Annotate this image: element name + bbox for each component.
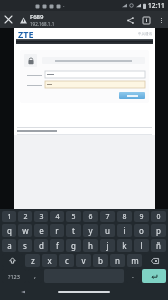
staticText: 1 — [7, 212, 12, 222]
staticText: m — [131, 255, 139, 266]
staticText: n — [115, 255, 120, 266]
button[interactable]: g — [66, 239, 81, 252]
staticText: g — [71, 240, 76, 251]
staticText: r — [55, 225, 59, 236]
staticText: 2 — [23, 212, 28, 222]
staticText: b — [98, 255, 103, 266]
button[interactable]: u — [100, 224, 115, 237]
staticText: c — [65, 255, 69, 266]
staticText: 7 — [105, 212, 110, 222]
staticText: ZTE — [18, 28, 34, 39]
button[interactable]: d — [34, 239, 48, 252]
staticText: ñ — [156, 240, 161, 251]
staticText: j — [106, 240, 109, 251]
button[interactable]: a — [2, 239, 16, 252]
staticText: F689 — [30, 13, 44, 21]
staticText: 0 — [156, 212, 161, 222]
staticText: ?123 — [8, 273, 20, 280]
button[interactable]: o — [134, 224, 149, 237]
button[interactable] — [119, 92, 145, 99]
button[interactable]: c — [59, 254, 74, 267]
staticText: , — [34, 271, 36, 281]
staticText: v — [81, 255, 86, 266]
button[interactable]: Close — [0, 11, 17, 28]
button[interactable]: x — [42, 254, 57, 267]
button[interactable]: t — [66, 224, 81, 237]
button[interactable]: z — [25, 254, 40, 267]
button[interactable]: k — [117, 239, 132, 252]
staticText: o — [139, 225, 144, 236]
button[interactable]: j — [100, 239, 115, 252]
staticText: 3 — [39, 212, 44, 222]
button[interactable]: 7 — [100, 211, 115, 222]
staticText: w — [22, 225, 29, 236]
staticText: 9 — [139, 212, 144, 222]
button[interactable] — [45, 71, 145, 78]
staticText: d — [39, 240, 44, 251]
staticText: 192.168.1.1 — [30, 21, 55, 27]
button[interactable]: s — [18, 239, 32, 252]
button[interactable]: , — [28, 269, 42, 283]
staticText: t — [72, 225, 75, 236]
staticText: 12:11 — [148, 1, 165, 10]
button[interactable]: 8 — [117, 211, 132, 222]
staticText: z — [31, 255, 35, 266]
button[interactable]: 4 — [50, 211, 64, 222]
button[interactable]: h — [83, 239, 98, 252]
button[interactable]: f — [50, 239, 64, 252]
button[interactable]: l — [134, 239, 149, 252]
button[interactable]: More options — [154, 13, 168, 27]
button[interactable]: Share — [122, 12, 138, 28]
button[interactable]: w — [18, 224, 32, 237]
staticText: 6 — [88, 212, 93, 222]
staticText: k — [122, 240, 127, 251]
staticText: a — [7, 240, 12, 251]
button[interactable]: v — [76, 254, 91, 267]
button[interactable]: 5 — [66, 211, 81, 222]
staticText: h — [88, 240, 93, 251]
button[interactable]: q — [2, 224, 16, 237]
staticText: q — [7, 225, 12, 236]
button[interactable]: i — [117, 224, 132, 237]
button[interactable]: Shift — [2, 254, 23, 267]
button[interactable]: p — [151, 224, 166, 237]
button[interactable]: Back — [20, 289, 26, 295]
button[interactable]: 2 — [18, 211, 32, 222]
staticText: e — [39, 225, 44, 236]
button[interactable]: e — [34, 224, 48, 237]
button[interactable]: y — [83, 224, 98, 237]
staticText: u — [105, 225, 110, 236]
staticText: s — [23, 240, 27, 251]
staticText: p — [156, 225, 161, 236]
button[interactable]: 0 — [151, 211, 166, 222]
button[interactable]: ñ — [151, 239, 166, 252]
staticText: 8 — [122, 212, 127, 222]
staticText: l — [140, 240, 143, 251]
staticText: x — [47, 255, 52, 266]
button[interactable]: . — [126, 269, 140, 283]
button[interactable]: m — [127, 254, 142, 267]
staticText: . — [132, 271, 134, 281]
button[interactable]: n — [110, 254, 125, 267]
staticText: f — [56, 240, 59, 251]
button[interactable]: 6 — [83, 211, 98, 222]
button[interactable]: ?123 — [2, 269, 26, 283]
staticText: i — [123, 225, 126, 236]
staticText: 中兴通讯 — [138, 32, 152, 36]
staticText: 5 — [71, 212, 76, 222]
button[interactable]: Save page — [138, 12, 154, 28]
button[interactable]: r — [50, 224, 64, 237]
staticText: 4 — [55, 212, 60, 222]
staticText: y — [88, 225, 93, 236]
staticText: · — [63, 2, 65, 10]
button[interactable] — [45, 81, 145, 88]
button[interactable]: 9 — [134, 211, 149, 222]
button[interactable]: b — [93, 254, 108, 267]
button[interactable]: 3 — [34, 211, 48, 222]
button[interactable]: Backspace — [144, 254, 166, 267]
button[interactable]: 1 — [2, 211, 16, 222]
button[interactable]: Site information — [17, 14, 29, 26]
button[interactable]: Enter — [142, 269, 166, 283]
